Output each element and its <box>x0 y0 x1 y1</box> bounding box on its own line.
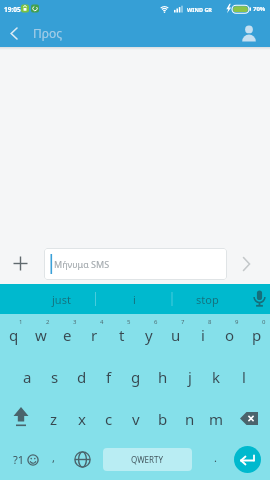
button[interactable]: , <box>46 439 60 480</box>
button[interactable]: i <box>104 284 164 314</box>
button[interactable]: QWERTY <box>103 448 192 471</box>
staticText: 7 <box>181 318 185 326</box>
staticText: w <box>35 325 47 345</box>
button[interactable]: ?1 <box>6 439 46 480</box>
staticText: b <box>158 409 168 429</box>
button[interactable]: q <box>0 314 27 356</box>
staticText: 1 <box>19 318 23 326</box>
button[interactable] <box>7 250 34 277</box>
staticText: 2 <box>46 318 50 326</box>
staticText: 6 <box>154 318 158 326</box>
button[interactable]: b <box>149 398 176 439</box>
staticText: k <box>212 367 221 387</box>
staticText: 19:05 <box>4 5 21 14</box>
staticText: Μήνυμα SMS <box>54 258 110 270</box>
button[interactable]: w <box>27 314 54 356</box>
button[interactable]: stop <box>177 284 237 314</box>
button[interactable]: c <box>95 398 122 439</box>
button[interactable]: . <box>206 439 224 480</box>
staticText: v <box>132 409 140 429</box>
staticText: stop <box>196 292 219 307</box>
button[interactable]: p <box>243 314 270 356</box>
button[interactable] <box>230 398 270 439</box>
staticText: 3 <box>73 318 77 326</box>
staticText: Προς <box>33 25 63 41</box>
button[interactable]: g <box>122 356 149 398</box>
button[interactable]: e <box>54 314 81 356</box>
staticText: 8 <box>208 318 212 326</box>
staticText: g <box>131 367 141 387</box>
staticText: i <box>201 325 205 345</box>
staticText: h <box>158 367 168 387</box>
staticText: 0 <box>262 318 266 326</box>
staticText: 5 <box>127 318 131 326</box>
button[interactable]: m <box>203 398 230 439</box>
button[interactable]: j <box>176 356 203 398</box>
button[interactable]: f <box>95 356 122 398</box>
button[interactable]: n <box>176 398 203 439</box>
staticText: , <box>52 450 55 465</box>
button[interactable] <box>236 20 262 46</box>
staticText: m <box>209 409 224 429</box>
button[interactable]: z <box>40 398 68 439</box>
button[interactable] <box>0 19 28 47</box>
button[interactable]: s <box>41 356 68 398</box>
staticText: s <box>51 367 59 387</box>
staticText: y <box>145 325 153 345</box>
staticText: c <box>105 409 113 429</box>
button[interactable]: Μήνυμα SMS <box>44 248 227 280</box>
button[interactable]: i <box>189 314 216 356</box>
staticText: e <box>63 325 72 345</box>
staticText: j <box>188 367 192 387</box>
staticText: WIND GR <box>187 6 212 13</box>
button[interactable]: h <box>149 356 176 398</box>
button[interactable]: u <box>162 314 189 356</box>
staticText: r <box>91 325 98 345</box>
staticText: i <box>133 292 136 307</box>
staticText: z <box>50 409 58 429</box>
staticText: a <box>23 367 32 387</box>
staticText: u <box>171 325 181 345</box>
button[interactable] <box>68 439 96 480</box>
button[interactable]: r <box>81 314 108 356</box>
staticText: . <box>214 450 217 465</box>
button[interactable]: v <box>122 398 149 439</box>
staticText: d <box>77 367 87 387</box>
button[interactable]: x <box>68 398 95 439</box>
staticText: f <box>106 367 112 387</box>
staticText: ?1 <box>13 452 25 467</box>
button[interactable]: t <box>108 314 135 356</box>
staticText: QWERTY <box>131 454 164 465</box>
button[interactable] <box>0 398 40 439</box>
staticText: l <box>242 367 246 387</box>
staticText: t <box>119 325 125 345</box>
button[interactable]: y <box>135 314 162 356</box>
staticText: 9 <box>235 318 239 326</box>
staticText: just <box>52 292 71 307</box>
staticText: x <box>78 409 86 429</box>
staticText: o <box>225 325 235 345</box>
button[interactable]: just <box>31 284 91 314</box>
staticText: q <box>9 325 19 345</box>
button[interactable]: d <box>68 356 95 398</box>
button[interactable] <box>234 446 261 473</box>
button[interactable] <box>232 250 260 278</box>
button[interactable]: o <box>216 314 243 356</box>
button[interactable]: a <box>13 356 41 398</box>
staticText: 70% <box>253 5 266 13</box>
staticText: n <box>185 409 195 429</box>
button[interactable]: k <box>203 356 230 398</box>
staticText: 4 <box>100 318 104 326</box>
button[interactable]: l <box>230 356 257 398</box>
button[interactable] <box>240 284 270 314</box>
staticText: p <box>252 325 262 345</box>
